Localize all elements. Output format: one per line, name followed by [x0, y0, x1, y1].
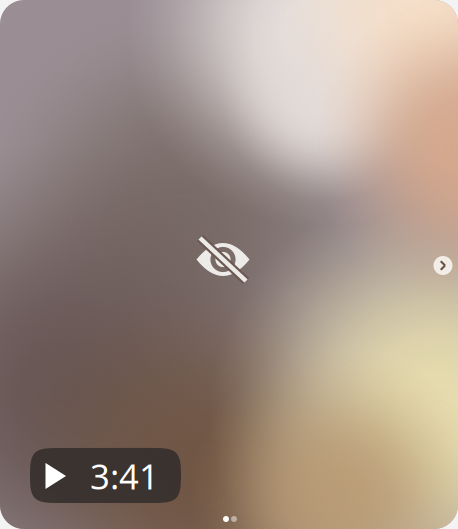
button[interactable]: Next photo	[427, 249, 458, 281]
staticText: 3:41	[90, 453, 159, 499]
button[interactable]: 3:41	[30, 448, 181, 503]
